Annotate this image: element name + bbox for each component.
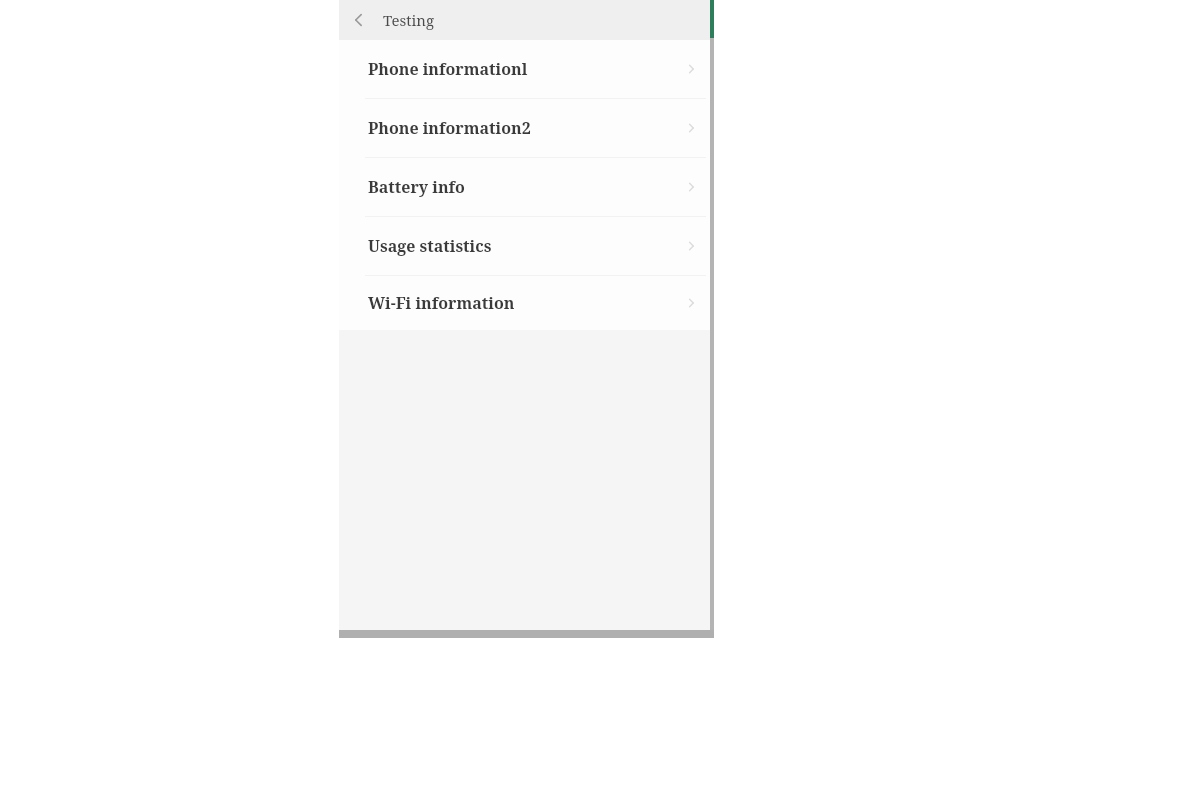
button[interactable]: Battery info — [339, 158, 714, 216]
button[interactable]: Wi-Fi information — [339, 276, 714, 330]
button[interactable]: Usage statistics — [339, 217, 714, 275]
staticText: Wi-Fi information — [368, 292, 515, 314]
staticText: Battery info — [368, 176, 465, 198]
button[interactable]: Back — [339, 0, 379, 40]
staticText: Testing — [383, 10, 435, 30]
staticText: Phone informationl — [368, 58, 528, 80]
staticText: Usage statistics — [368, 235, 492, 257]
button[interactable]: Phone informationl — [339, 40, 714, 98]
staticText: Phone information2 — [368, 117, 531, 139]
button[interactable]: Phone information2 — [339, 99, 714, 157]
